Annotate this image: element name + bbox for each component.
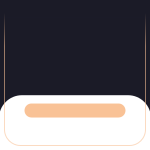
button[interactable]: Continue [24, 103, 125, 117]
